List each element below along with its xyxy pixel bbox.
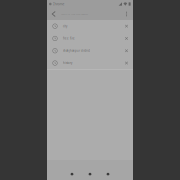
button[interactable]: city (47, 20, 133, 32)
staticText: city (63, 24, 67, 28)
button[interactable]: Recent apps (105, 160, 110, 180)
button[interactable]: history (47, 57, 133, 69)
button[interactable]: shahjhanpur district (47, 45, 133, 57)
button[interactable]: free fire (47, 32, 133, 45)
staticText: history (63, 61, 72, 65)
button[interactable]: Home (87, 160, 92, 180)
staticText: shahjhanpur district (63, 49, 90, 52)
staticText: Chrome (53, 2, 65, 6)
staticText: free fire (63, 37, 75, 40)
staticText: Search or type web address (61, 12, 88, 16)
button[interactable]: Back (69, 160, 74, 180)
button[interactable]: Back (47, 8, 61, 20)
button[interactable]: More options (120, 8, 133, 20)
